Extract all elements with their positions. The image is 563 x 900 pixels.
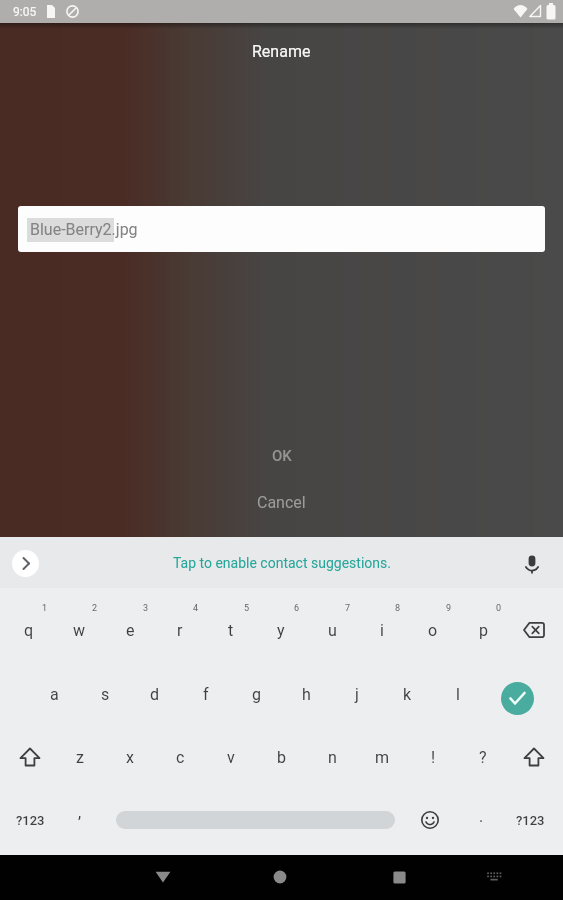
button[interactable]	[490, 671, 544, 725]
button[interactable]: m	[357, 728, 407, 786]
staticText: 7	[345, 603, 351, 614]
staticText: !	[431, 748, 436, 767]
button[interactable]: v	[206, 728, 256, 786]
button[interactable]	[139, 855, 187, 899]
staticText: 3	[143, 603, 149, 614]
button[interactable]: s	[80, 665, 130, 723]
button[interactable]	[12, 550, 39, 577]
button[interactable]: r	[155, 601, 205, 659]
button[interactable]: c	[155, 728, 205, 786]
staticText: Rename	[252, 42, 311, 61]
button[interactable]: i	[357, 601, 407, 659]
staticText: Blue-Berry2.jpg	[30, 220, 138, 239]
button[interactable]	[474, 857, 514, 897]
staticText: h	[302, 685, 311, 704]
staticText: v	[227, 748, 235, 767]
button[interactable]: n	[307, 728, 357, 786]
staticText: n	[328, 748, 337, 767]
staticText: 6	[294, 603, 300, 614]
button[interactable]: u	[307, 601, 357, 659]
staticText: 0	[496, 603, 502, 614]
staticText: k	[403, 685, 412, 704]
staticText: Cancel	[257, 493, 306, 512]
button[interactable]: q	[4, 601, 54, 659]
button[interactable]: p	[458, 601, 508, 659]
staticText: b	[277, 748, 286, 767]
staticText: p	[479, 621, 488, 640]
staticText: ?123	[16, 813, 45, 828]
staticText: ,	[78, 803, 82, 822]
button[interactable]: f	[181, 665, 231, 723]
staticText: a	[50, 685, 59, 704]
staticText: q	[24, 621, 34, 640]
button[interactable]: ?123	[3, 791, 57, 849]
staticText: y	[277, 621, 285, 640]
staticText: r	[177, 621, 183, 640]
staticText: w	[73, 621, 86, 640]
button[interactable]: h	[281, 665, 331, 723]
staticText: s	[101, 685, 110, 704]
button[interactable]: w	[54, 601, 104, 659]
staticText: i	[380, 621, 384, 640]
button[interactable]: k	[382, 665, 432, 723]
staticText: Tap to enable contact suggestions.	[173, 555, 391, 571]
button[interactable]: y	[256, 601, 306, 659]
button[interactable]: ,	[60, 783, 100, 841]
button[interactable]: x	[105, 728, 155, 786]
staticText: 4	[193, 603, 199, 614]
button[interactable]: .	[463, 787, 499, 845]
staticText: 9	[446, 603, 452, 614]
staticText: e	[126, 621, 135, 640]
button[interactable]: ?	[458, 728, 508, 786]
button[interactable]: o	[408, 601, 458, 659]
staticText: d	[150, 685, 160, 704]
button[interactable]: Tap to enable contact suggestions.	[120, 550, 443, 576]
button[interactable]	[408, 791, 452, 849]
staticText: c	[176, 748, 185, 767]
staticText: z	[76, 748, 84, 767]
button[interactable]: l	[433, 665, 483, 723]
staticText: 1	[42, 603, 48, 614]
staticText: ?	[479, 748, 487, 767]
button[interactable]: a	[29, 665, 79, 723]
button[interactable]: j	[332, 665, 382, 723]
staticText: .	[479, 807, 484, 826]
button[interactable]	[518, 549, 546, 579]
button[interactable]	[5, 728, 55, 786]
button[interactable]	[509, 728, 559, 786]
button[interactable]: ?123	[503, 791, 557, 849]
button[interactable]: z	[55, 728, 105, 786]
staticText: OK	[272, 447, 292, 465]
staticText: m	[375, 748, 390, 767]
staticText: o	[428, 621, 438, 640]
button[interactable]: Cancel	[235, 489, 328, 515]
button[interactable]	[375, 855, 423, 899]
button[interactable]: e	[105, 601, 155, 659]
staticText: g	[252, 685, 261, 704]
button[interactable]: !	[408, 728, 458, 786]
staticText: 5	[244, 603, 250, 614]
button[interactable]	[256, 855, 304, 899]
button[interactable]: OK	[245, 443, 318, 469]
staticText: u	[328, 621, 337, 640]
button[interactable]: b	[256, 728, 306, 786]
staticText: j	[355, 685, 359, 704]
staticText: f	[203, 685, 209, 704]
button[interactable]: t	[206, 601, 256, 659]
staticText: t	[228, 621, 234, 640]
button[interactable]: d	[130, 665, 180, 723]
button[interactable]	[509, 601, 559, 659]
staticText: 9:05	[13, 5, 37, 19]
staticText: 8	[395, 603, 401, 614]
staticText: l	[456, 685, 460, 704]
staticText: ?123	[516, 813, 545, 828]
staticText: x	[126, 748, 134, 767]
staticText: 2	[92, 603, 98, 614]
button[interactable]: g	[231, 665, 281, 723]
button[interactable]	[18, 206, 545, 252]
